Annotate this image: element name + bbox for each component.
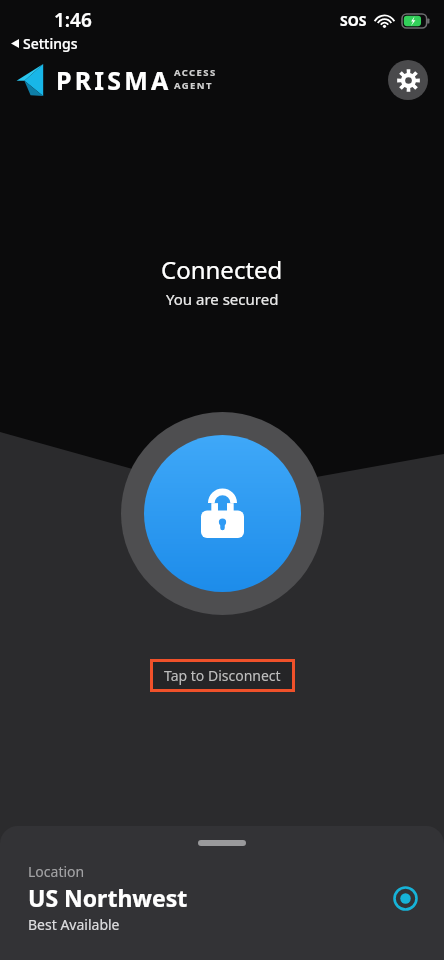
staticText: AGENT	[174, 79, 213, 92]
staticText: 1:46	[54, 7, 92, 33]
staticText: Settings	[23, 34, 78, 53]
staticText: ACCESS	[174, 66, 217, 79]
button[interactable]: Settings	[11, 34, 78, 53]
staticText: PRISMA	[56, 63, 172, 97]
staticText: You are secured	[166, 289, 279, 309]
staticText: US Northwest	[28, 882, 188, 913]
button[interactable]: Location	[0, 826, 444, 960]
staticText: Best Available	[28, 915, 120, 934]
staticText: SOS	[340, 11, 367, 30]
staticText: Location	[28, 862, 85, 881]
button[interactable]: Settings	[388, 60, 428, 100]
staticText: Tap to Disconnect	[164, 666, 281, 685]
button[interactable]: Selected location	[393, 886, 418, 911]
staticText: Connected	[161, 253, 283, 286]
button[interactable]: Tap to Disconnect	[150, 659, 295, 692]
button[interactable]: Disconnect VPN	[121, 412, 324, 615]
